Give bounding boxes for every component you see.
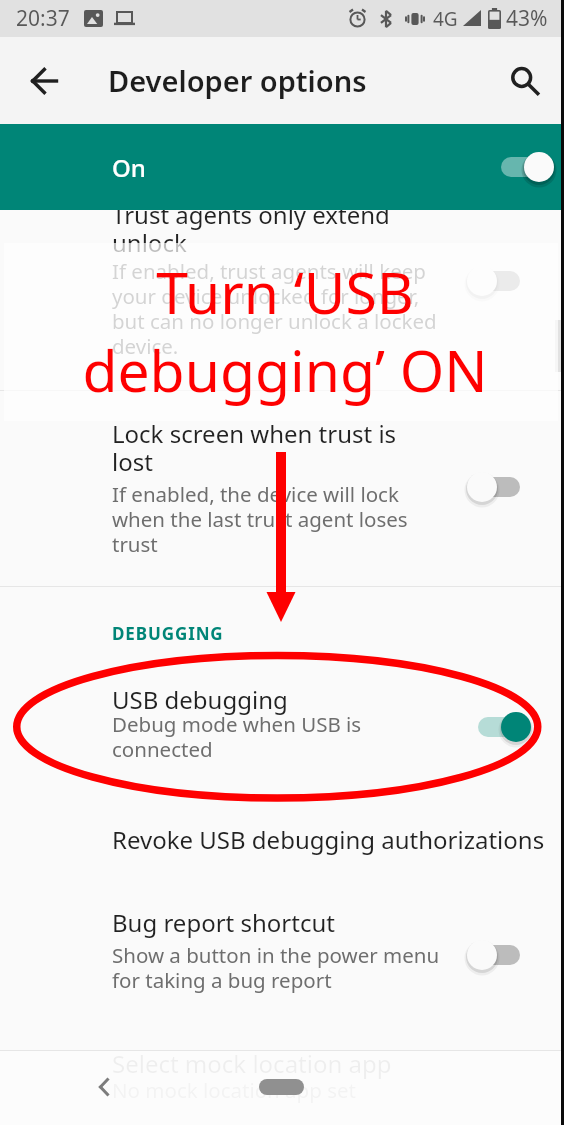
- staticText: USB debugging: [112, 683, 288, 716]
- staticText: On: [112, 151, 146, 184]
- staticText: No mock location app set: [112, 1076, 356, 1104]
- button[interactable]: Switch off: [467, 465, 531, 509]
- staticText: 20:37: [16, 4, 70, 33]
- button[interactable]: Switch off: [467, 259, 531, 303]
- button[interactable]: Home: [259, 1079, 304, 1095]
- staticText: Bug report shortcut: [112, 906, 335, 939]
- button[interactable]: Lock screen when trust is lost: [0, 391, 564, 586]
- staticText: Developer options: [108, 61, 367, 100]
- staticText: Show a button in the power menu for taki…: [112, 941, 440, 994]
- button[interactable]: Search: [490, 37, 551, 124]
- button[interactable]: On: [0, 124, 564, 210]
- button[interactable]: Revoke USB debugging authorizations: [0, 791, 564, 880]
- button[interactable]: Switch on: [467, 705, 531, 749]
- staticText: Turn ‘USB debugging’ ON: [3, 253, 564, 409]
- staticText: 43%: [506, 4, 548, 33]
- button[interactable]: Back: [13, 37, 74, 124]
- button[interactable]: Bug report shortcut: [0, 881, 564, 1020]
- button[interactable]: USB debugging: [0, 660, 564, 790]
- staticText: If enabled, trust agents will keep your …: [112, 257, 437, 360]
- staticText: 4G: [433, 6, 458, 32]
- staticText: Trust agents only extend unlock: [112, 198, 390, 259]
- button[interactable]: Switch off: [467, 933, 531, 977]
- button[interactable]: Trust agents only extend unlock: [0, 210, 564, 390]
- staticText: Lock screen when trust is lost: [112, 417, 397, 478]
- button[interactable]: Back: [80, 1063, 128, 1111]
- staticText: Revoke USB debugging authorizations: [112, 823, 545, 856]
- staticText: Select mock location app: [112, 1047, 392, 1080]
- staticText: DEBUGGING: [112, 622, 224, 645]
- staticText: If enabled, the device will lock when th…: [112, 480, 408, 558]
- button[interactable]: Select mock location app: [0, 1040, 564, 1120]
- staticText: Debug mode when USB is connected: [112, 710, 362, 763]
- button[interactable]: Developer options on: [490, 145, 554, 189]
